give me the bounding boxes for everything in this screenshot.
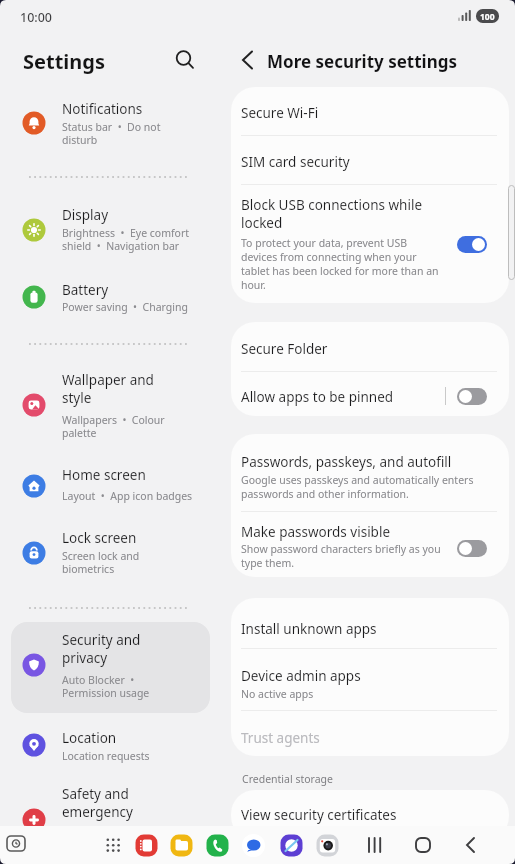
- button[interactable]: Lock screen: [11, 522, 210, 582]
- staticText: Brightness • Eye comfort shield • Naviga…: [62, 226, 210, 253]
- staticText: Location: [62, 729, 210, 747]
- button[interactable]: [231, 598, 509, 756]
- button[interactable]: [5, 833, 29, 857]
- button[interactable]: Display: [11, 200, 210, 258]
- staticText: Passwords, passkeys, and autofill: [241, 453, 452, 471]
- staticText: Lock screen: [62, 529, 210, 547]
- button[interactable]: Home screen: [11, 460, 210, 510]
- button[interactable]: [316, 834, 339, 857]
- button[interactable]: Security and privacy: [11, 622, 210, 713]
- button[interactable]: [231, 322, 509, 416]
- staticText: Screen lock and biometrics: [62, 549, 210, 576]
- button[interactable]: [170, 45, 200, 75]
- staticText: Wallpapers • Colour palette: [62, 413, 210, 440]
- staticText: More security settings: [267, 50, 458, 73]
- staticText: Allow apps to be pinned: [241, 388, 394, 406]
- button[interactable]: [170, 834, 193, 857]
- button[interactable]: [242, 834, 265, 857]
- staticText: 10:00: [20, 9, 53, 26]
- button[interactable]: [102, 834, 125, 857]
- staticText: Location requests: [62, 749, 210, 763]
- staticText: Device admin apps: [241, 667, 361, 685]
- staticText: Home screen: [62, 466, 210, 484]
- staticText: Security and privacy: [62, 631, 210, 667]
- staticText: Install unknown apps: [241, 620, 377, 638]
- button[interactable]: Safety and emergency: [11, 780, 210, 826]
- staticText: Auto Blocker • Permission usage: [62, 673, 210, 700]
- button[interactable]: [231, 790, 509, 840]
- staticText: Notifications: [62, 100, 210, 118]
- staticText: Make passwords visible: [241, 523, 391, 541]
- staticText: View security certificates: [241, 806, 397, 824]
- button[interactable]: [457, 388, 487, 405]
- button[interactable]: [457, 540, 487, 557]
- staticText: Show password characters briefly as you …: [241, 542, 441, 570]
- button[interactable]: Wallpaper and style: [11, 366, 210, 446]
- staticText: Display: [62, 206, 210, 224]
- button[interactable]: [231, 87, 509, 135]
- button[interactable]: [408, 831, 438, 859]
- button[interactable]: [280, 834, 303, 857]
- button[interactable]: Location: [11, 722, 210, 772]
- button[interactable]: [231, 434, 509, 577]
- staticText: Secure Wi-Fi: [241, 104, 319, 122]
- button[interactable]: [135, 834, 158, 857]
- staticText: Status bar • Do not disturb: [62, 120, 210, 147]
- staticText: Trust agents: [241, 729, 320, 747]
- button[interactable]: [457, 236, 487, 253]
- button[interactable]: Battery: [11, 275, 210, 320]
- staticText: Power saving • Charging: [62, 300, 210, 314]
- button[interactable]: [206, 834, 229, 857]
- button[interactable]: [231, 135, 509, 184]
- button[interactable]: [456, 831, 486, 859]
- staticText: SIM card security: [241, 153, 350, 171]
- staticText: No active apps: [241, 687, 314, 701]
- staticText: 100: [480, 11, 495, 23]
- button[interactable]: [360, 831, 390, 859]
- staticText: Battery: [62, 281, 210, 299]
- staticText: Wallpaper and style: [62, 371, 210, 407]
- staticText: Settings: [23, 48, 105, 75]
- staticText: Google uses passkeys and automatically e…: [241, 473, 474, 501]
- staticText: Block USB connections while locked: [241, 196, 422, 232]
- button[interactable]: Notifications: [11, 94, 210, 155]
- button[interactable]: [231, 184, 509, 303]
- staticText: Secure Folder: [241, 340, 328, 358]
- staticText: Layout • App icon badges: [62, 489, 210, 503]
- staticText: Safety and emergency: [62, 785, 210, 821]
- staticText: To protect your data, prevent USB device…: [241, 236, 439, 292]
- staticText: Credential storage: [242, 772, 333, 786]
